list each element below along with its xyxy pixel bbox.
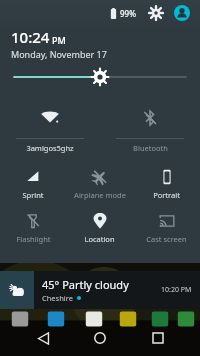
staticText: 45° Partly cloudy [42, 277, 129, 292]
button[interactable]: Sprint [0, 162, 66, 204]
staticText: Cheshire [42, 293, 73, 303]
staticText: Location [84, 234, 115, 244]
button[interactable]: Portrait [133, 162, 200, 204]
staticText: 3amigos5ghz [26, 143, 74, 153]
button[interactable]: Cast screen [133, 206, 200, 248]
staticText: Sprint [22, 190, 44, 200]
button[interactable]: User [172, 3, 192, 23]
button[interactable]: Brightness [14, 64, 186, 90]
staticText: Monday, November 17 [11, 48, 107, 60]
button[interactable]: Flashlight [0, 206, 66, 248]
staticText: PM [52, 34, 66, 46]
button[interactable]: Back [28, 323, 58, 353]
staticText: Portrait [153, 190, 180, 200]
staticText: Cast screen [146, 234, 187, 244]
staticText: Flashlight [16, 234, 51, 244]
button[interactable]: 3amigos5ghz [16, 98, 84, 156]
staticText: 99% [120, 8, 136, 19]
button[interactable]: Home [85, 323, 115, 353]
staticText: 10:24 [11, 27, 50, 47]
button[interactable]: Recents [143, 323, 173, 353]
button[interactable]: Settings [146, 3, 166, 23]
button[interactable]: Location [66, 206, 133, 248]
staticText: Airplane mode [74, 190, 126, 200]
button[interactable]: 45° Partly cloudy [0, 271, 200, 309]
button[interactable]: Bluetooth [116, 98, 184, 156]
staticText: Bluetooth [133, 143, 168, 153]
button[interactable]: Airplane mode [66, 162, 133, 204]
staticText: 10:20 PM [161, 285, 192, 295]
